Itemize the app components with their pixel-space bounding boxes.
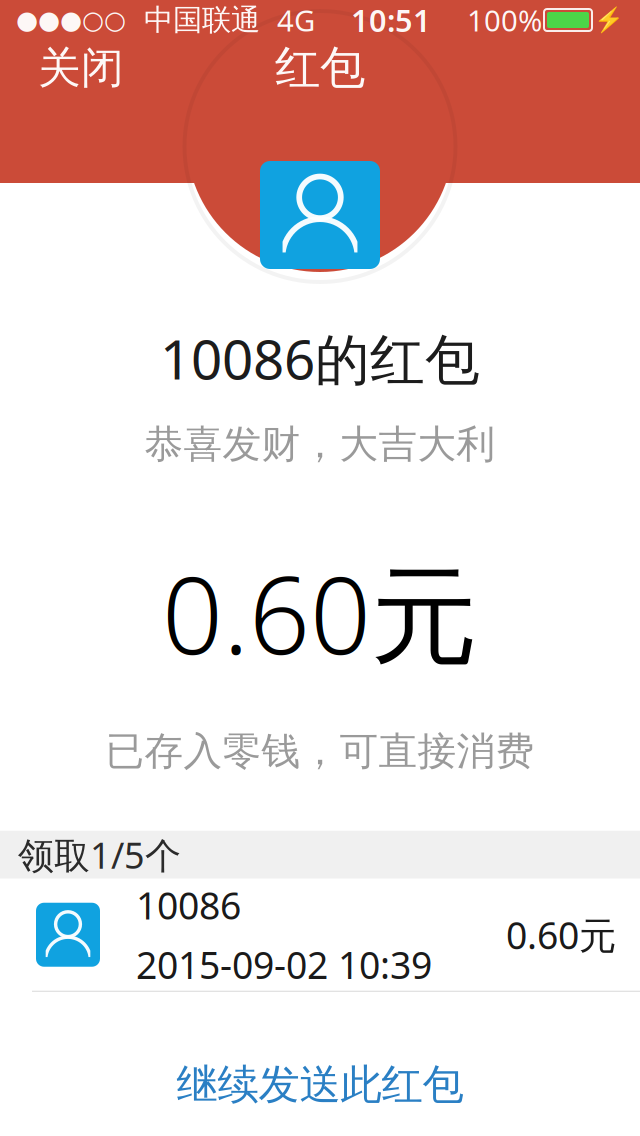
staticText: 0.60元 — [162, 542, 478, 684]
button[interactable]: 关闭 — [20, 34, 142, 102]
staticText: 红包 — [275, 40, 365, 96]
staticText: 0.60元 — [506, 910, 616, 959]
staticText: 已存入零钱，可直接消费 — [105, 728, 534, 775]
staticText: 100% — [467, 0, 542, 39]
button[interactable]: 10086 — [0, 879, 640, 992]
staticText: ⚡ — [594, 6, 624, 34]
staticText: 领取1/5个 — [18, 831, 181, 879]
staticText: 10086的红包 — [160, 322, 480, 395]
button[interactable]: 继续发送此红包 — [136, 1047, 503, 1122]
staticText: 4G — [269, 0, 315, 39]
staticText: 中国联通 — [126, 2, 269, 38]
staticText: ●●●○○ — [16, 6, 126, 34]
staticText: 10:51 — [351, 0, 431, 40]
staticText: 关闭 — [38, 42, 124, 94]
staticText: 2015-09-02 10:39 — [136, 940, 432, 989]
staticText: 10086 — [136, 880, 241, 930]
staticText: 继续发送此红包 — [176, 1059, 463, 1110]
staticText: 恭喜发财，大吉大利 — [144, 421, 495, 468]
